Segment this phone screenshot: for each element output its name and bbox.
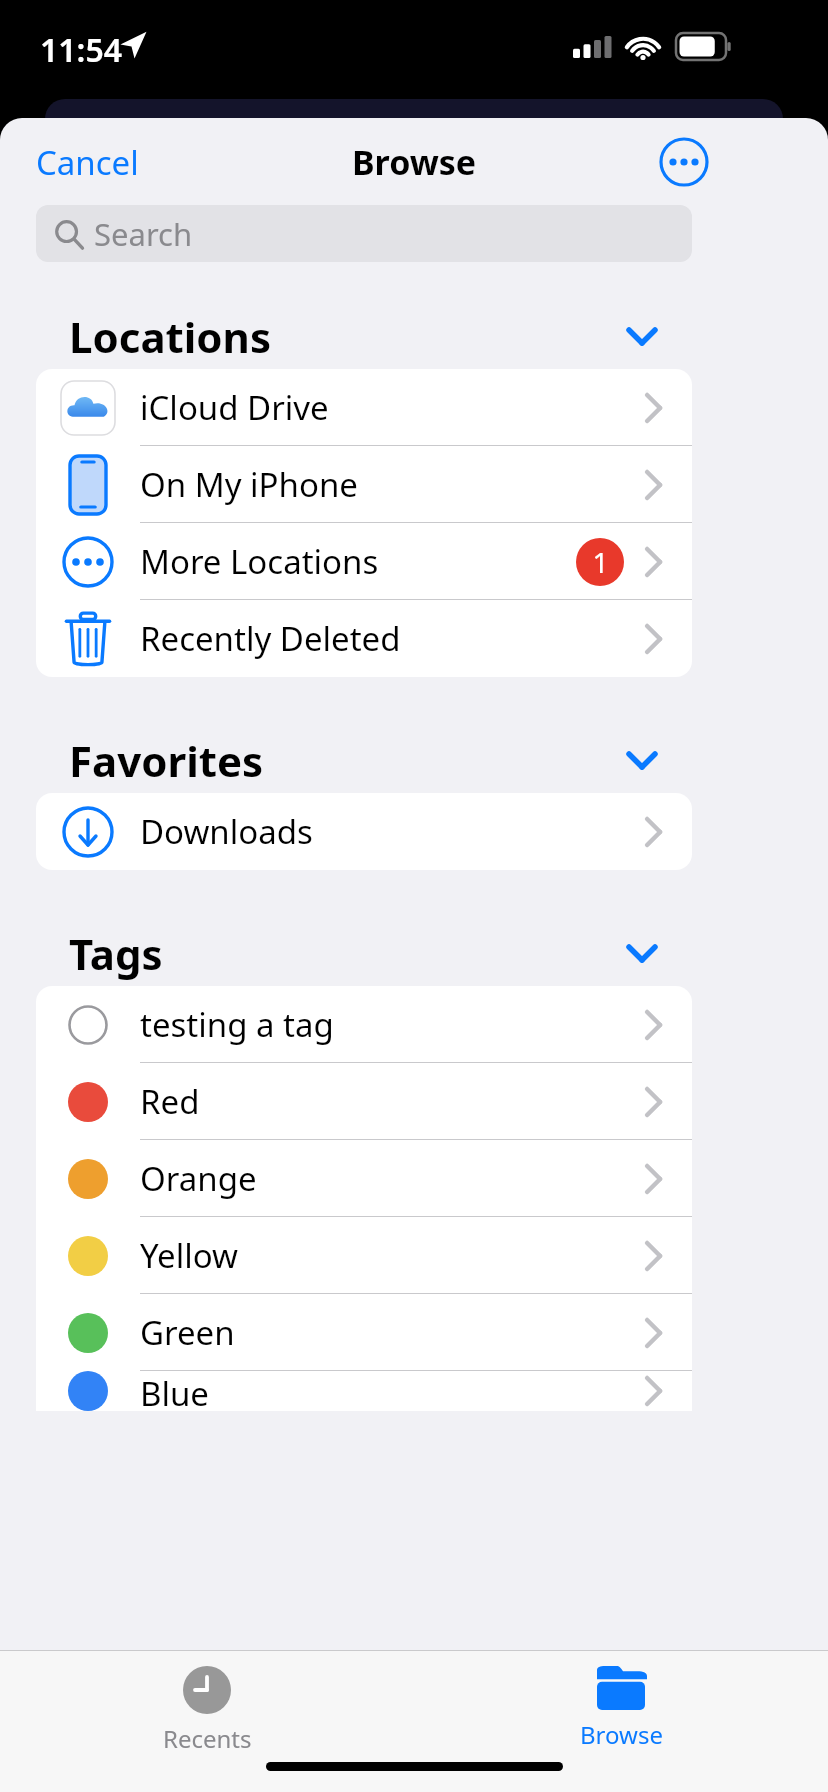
staticText: Browse [352,139,477,185]
button[interactable]: Search [36,205,692,262]
button[interactable]: Red [36,1063,692,1140]
button[interactable]: iCloud Drive [36,369,692,446]
button[interactable]: Yellow [36,1217,692,1294]
staticText: Red [140,1079,638,1124]
staticText: Green [140,1310,638,1355]
button[interactable]: More Locations [36,523,692,600]
staticText: 1 [592,543,609,581]
staticText: Search [94,213,193,255]
button[interactable]: Recently Deleted [36,600,692,677]
staticText: Orange [140,1156,638,1201]
button[interactable]: Blue [36,1371,692,1411]
button[interactable]: Collapse Tags [620,931,664,975]
staticText: Recently Deleted [140,616,638,661]
button[interactable]: Recents [0,1650,414,1760]
staticText: Browse [580,1718,663,1751]
staticText: On My iPhone [140,462,638,507]
button[interactable]: Green [36,1294,692,1371]
button[interactable]: Collapse Locations [620,314,664,358]
staticText: More Locations [140,539,576,584]
button[interactable]: Cancel [22,132,153,193]
staticText: Tags [69,925,163,982]
staticText: Locations [69,308,271,365]
button[interactable]: On My iPhone [36,446,692,523]
staticText: 11:54 [40,28,123,72]
button[interactable]: Collapse Favorites [620,738,664,782]
staticText: Blue [140,1371,638,1411]
staticText: Downloads [140,809,638,854]
staticText: Yellow [140,1233,638,1278]
staticText: Cancel [36,140,139,185]
button[interactable]: testing a tag [36,986,692,1063]
staticText: testing a tag [140,1002,638,1047]
button[interactable]: Downloads [36,793,692,870]
staticText: iCloud Drive [140,385,638,430]
button[interactable]: More options [658,136,710,188]
button[interactable]: Browse [414,1650,828,1760]
staticText: Recents [163,1722,252,1755]
staticText: Favorites [69,732,264,789]
button[interactable]: Orange [36,1140,692,1217]
